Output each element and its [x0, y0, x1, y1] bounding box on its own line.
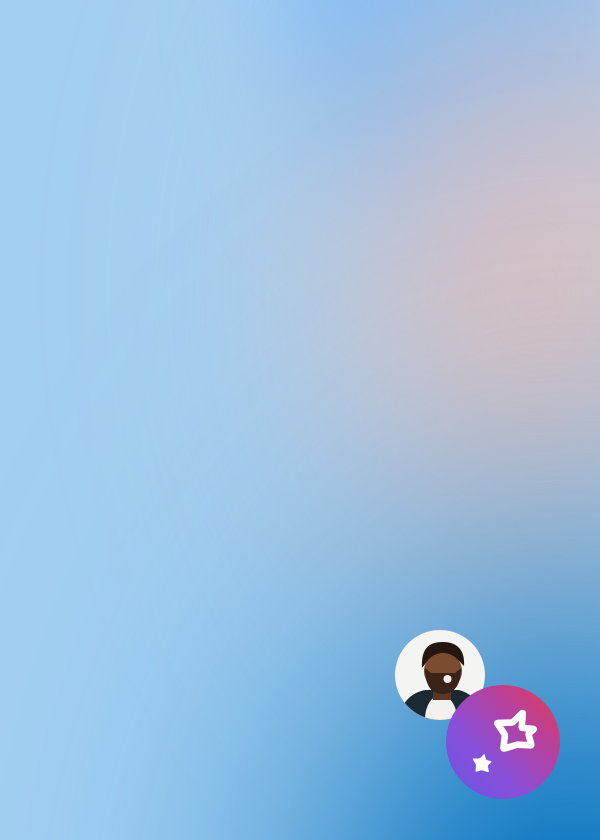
button[interactable]: Ask AI [446, 685, 560, 799]
button[interactable]: Profile [395, 630, 485, 720]
